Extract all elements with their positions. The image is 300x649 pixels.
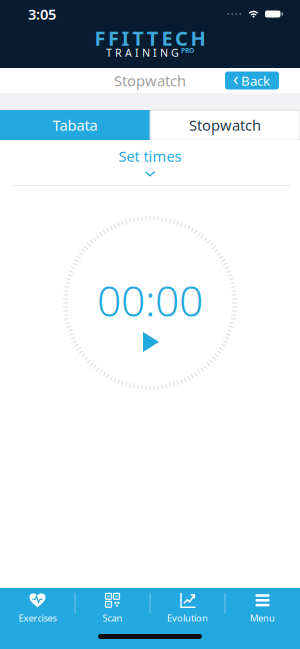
button[interactable]: Set times: [118, 148, 181, 178]
staticText: PRO: [181, 46, 194, 55]
staticText: Evolution: [167, 612, 208, 624]
staticText: Exercises: [18, 612, 56, 624]
staticText: TRAINING: [106, 45, 179, 60]
staticText: 00:00: [97, 272, 203, 328]
button[interactable]: Tabata: [0, 110, 150, 140]
button[interactable]: Evolution: [150, 590, 225, 627]
staticText: Back: [241, 72, 270, 89]
staticText: Stopwatch: [189, 115, 261, 135]
button[interactable]: Start: [143, 332, 159, 352]
staticText: Menu: [250, 612, 275, 624]
staticText: Tabata: [52, 115, 97, 135]
staticText: Stopwatch: [114, 71, 186, 90]
button[interactable]: Exercises: [0, 590, 75, 627]
staticText: FFITTECH: [94, 25, 206, 51]
button[interactable]: Back: [225, 71, 279, 89]
staticText: Set times: [118, 146, 181, 166]
button[interactable]: Stopwatch: [150, 110, 300, 140]
staticText: Scan: [102, 612, 122, 624]
button[interactable]: Scan: [75, 590, 150, 627]
staticText: 3:05: [28, 4, 56, 24]
button[interactable]: Menu: [225, 590, 300, 627]
